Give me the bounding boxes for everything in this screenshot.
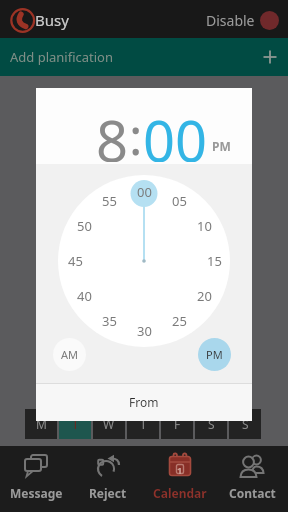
button[interactable]: AM bbox=[53, 338, 86, 371]
button[interactable]: Add planification bbox=[0, 38, 288, 76]
button[interactable]: PM bbox=[198, 338, 231, 371]
button[interactable]: F bbox=[161, 409, 193, 439]
staticText: M bbox=[36, 416, 47, 432]
staticText: 50 bbox=[77, 217, 92, 235]
button[interactable] bbox=[260, 11, 279, 30]
staticText: 45 bbox=[68, 252, 83, 270]
button[interactable]: Message bbox=[0, 446, 72, 512]
staticText: AM bbox=[61, 347, 79, 362]
staticText: Contact bbox=[229, 485, 276, 501]
button[interactable]: M bbox=[25, 409, 57, 439]
staticText: F bbox=[174, 416, 181, 432]
staticText: T bbox=[72, 416, 79, 432]
button[interactable]: Contact bbox=[216, 446, 288, 512]
staticText: S bbox=[242, 416, 249, 432]
staticText: PM bbox=[206, 347, 223, 362]
staticText: PM bbox=[212, 138, 231, 154]
staticText: 35 bbox=[102, 312, 117, 330]
button[interactable]: 1 bbox=[144, 446, 216, 512]
staticText: Message bbox=[10, 485, 63, 501]
button[interactable]: From bbox=[36, 383, 252, 421]
staticText: 00 bbox=[143, 102, 208, 162]
staticText: Calendar bbox=[153, 485, 207, 501]
staticText: 15 bbox=[207, 252, 222, 270]
button[interactable]: W bbox=[93, 409, 125, 439]
staticText: Add planification bbox=[10, 48, 114, 66]
staticText: S bbox=[208, 416, 215, 432]
button[interactable]: T bbox=[127, 409, 159, 439]
staticText: W bbox=[103, 416, 115, 432]
staticText: Disable bbox=[206, 11, 255, 30]
staticText: : bbox=[129, 102, 143, 162]
staticText: 1 bbox=[177, 464, 183, 476]
staticText: 55 bbox=[102, 192, 117, 210]
staticText: Busy bbox=[35, 10, 69, 30]
button[interactable]: T bbox=[59, 409, 91, 439]
button[interactable]: S bbox=[195, 409, 227, 439]
staticText: 10 bbox=[197, 217, 212, 235]
staticText: 20 bbox=[197, 287, 212, 305]
button[interactable]: S bbox=[229, 409, 261, 439]
staticText: T bbox=[140, 416, 147, 432]
staticText: 25 bbox=[172, 312, 187, 330]
staticText: 8 bbox=[96, 102, 129, 162]
staticText: Reject bbox=[89, 485, 127, 501]
staticText: 40 bbox=[77, 287, 92, 305]
staticText: 30 bbox=[137, 322, 152, 340]
staticText: From bbox=[129, 394, 159, 410]
staticText: 05 bbox=[172, 192, 187, 210]
staticText: 00 bbox=[137, 183, 152, 201]
button[interactable]: Reject bbox=[72, 446, 144, 512]
